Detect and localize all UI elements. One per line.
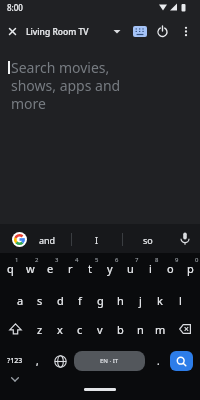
staticText: 8 bbox=[155, 256, 159, 264]
button[interactable] bbox=[8, 373, 22, 385]
staticText: 1 bbox=[15, 256, 19, 264]
button[interactable]: and bbox=[30, 231, 64, 248]
staticText: v bbox=[97, 322, 103, 337]
button[interactable]: Living Room TV bbox=[26, 24, 122, 39]
staticText: 5 bbox=[95, 256, 99, 264]
staticText: w bbox=[26, 261, 35, 276]
button[interactable]: j bbox=[130, 289, 150, 311]
staticText: more bbox=[11, 94, 46, 112]
button[interactable]: f bbox=[70, 289, 90, 311]
staticText: c bbox=[77, 322, 83, 337]
button[interactable] bbox=[0, 318, 30, 340]
staticText: EN · IT bbox=[100, 357, 119, 365]
button[interactable]: t bbox=[80, 257, 100, 279]
staticText: m bbox=[155, 322, 166, 337]
button[interactable]: EN · IT bbox=[74, 351, 145, 371]
staticText: q bbox=[7, 261, 14, 276]
staticText: f bbox=[78, 293, 82, 308]
staticText: 4 bbox=[75, 256, 79, 264]
staticText: 0 bbox=[195, 256, 199, 264]
button[interactable] bbox=[52, 352, 69, 370]
staticText: Living Room TV bbox=[26, 26, 89, 38]
staticText: x bbox=[57, 322, 63, 337]
button[interactable]: z bbox=[30, 318, 50, 340]
staticText: I bbox=[95, 234, 99, 246]
staticText: j bbox=[139, 293, 142, 308]
staticText: 3 bbox=[55, 256, 59, 264]
staticText: 8:00 bbox=[7, 2, 23, 13]
button[interactable]: e bbox=[40, 257, 60, 279]
button[interactable]: u bbox=[120, 257, 140, 279]
button[interactable] bbox=[170, 318, 200, 340]
staticText: e bbox=[47, 261, 54, 276]
button[interactable]: p bbox=[180, 257, 200, 279]
staticText: , bbox=[36, 354, 39, 368]
button[interactable]: i bbox=[140, 257, 160, 279]
staticText: 6 bbox=[115, 256, 119, 264]
button[interactable]: n bbox=[130, 318, 150, 340]
staticText: p bbox=[187, 261, 194, 276]
button[interactable]: q bbox=[0, 257, 20, 279]
button[interactable] bbox=[132, 25, 148, 38]
staticText: u bbox=[127, 261, 134, 276]
button[interactable]: v bbox=[90, 318, 110, 340]
staticText: n bbox=[137, 322, 144, 337]
button[interactable]: w bbox=[20, 257, 40, 279]
button[interactable]: k bbox=[150, 289, 170, 311]
button[interactable] bbox=[2, 351, 28, 371]
staticText: z bbox=[37, 322, 43, 337]
button[interactable]: , bbox=[30, 351, 45, 371]
button[interactable] bbox=[178, 230, 192, 249]
button[interactable]: s bbox=[30, 289, 50, 311]
button[interactable] bbox=[181, 25, 191, 38]
button[interactable]: o bbox=[160, 257, 180, 279]
staticText: k bbox=[157, 293, 163, 308]
staticText: . bbox=[157, 354, 160, 368]
staticText: g bbox=[97, 293, 104, 308]
staticText: o bbox=[167, 261, 174, 276]
button[interactable]: . bbox=[150, 351, 166, 371]
button[interactable]: a bbox=[10, 289, 30, 311]
button[interactable]: y bbox=[100, 257, 120, 279]
staticText: y bbox=[107, 261, 113, 276]
staticText: 9 bbox=[175, 256, 179, 264]
button[interactable]: c bbox=[70, 318, 90, 340]
button[interactable]: d bbox=[50, 289, 70, 311]
staticText: i bbox=[149, 261, 152, 276]
staticText: shows, apps and bbox=[11, 76, 121, 94]
button[interactable]: r bbox=[60, 257, 80, 279]
staticText: a bbox=[17, 293, 24, 308]
staticText: d bbox=[57, 293, 64, 308]
staticText: r bbox=[68, 261, 73, 276]
staticText: so bbox=[143, 234, 153, 246]
staticText: s bbox=[37, 293, 43, 308]
button[interactable]: l bbox=[170, 289, 190, 311]
button[interactable]: h bbox=[110, 289, 130, 311]
button[interactable]: g bbox=[90, 289, 110, 311]
button[interactable]: so bbox=[132, 231, 164, 248]
button[interactable] bbox=[12, 232, 27, 247]
button[interactable] bbox=[170, 351, 193, 371]
staticText: h bbox=[117, 293, 124, 308]
staticText: 7 bbox=[135, 256, 139, 264]
button[interactable]: b bbox=[110, 318, 130, 340]
staticText: 2 bbox=[35, 256, 39, 264]
button[interactable]: x bbox=[50, 318, 70, 340]
button[interactable]: I bbox=[81, 231, 113, 248]
staticText: b bbox=[117, 322, 124, 337]
button[interactable]: m bbox=[150, 318, 170, 340]
button[interactable] bbox=[5, 24, 20, 39]
staticText: Search movies, bbox=[11, 58, 110, 76]
staticText: l bbox=[179, 293, 182, 308]
button[interactable] bbox=[156, 25, 169, 38]
staticText: and bbox=[39, 234, 56, 246]
staticText: t bbox=[88, 261, 92, 276]
staticText: ?123 bbox=[7, 356, 23, 366]
